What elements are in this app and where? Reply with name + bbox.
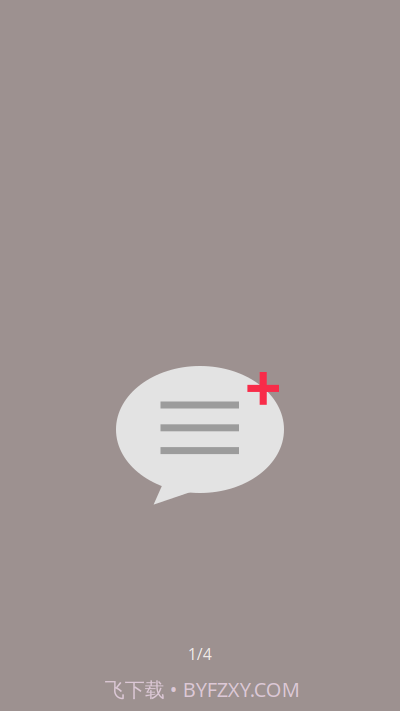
staticText: 1/4 [188,643,212,664]
staticText: 飞下载 • BYFZXY.COM [105,676,300,702]
button[interactable]: New message illustration, continue [0,0,400,711]
